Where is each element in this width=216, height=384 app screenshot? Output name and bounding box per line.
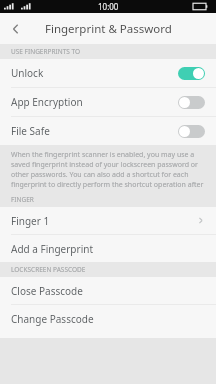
button[interactable]: File Safe (0, 117, 216, 145)
staticText: Add a Fingerprint (11, 242, 94, 256)
button[interactable]: Close Passcode (0, 277, 216, 304)
staticText: Change Passcode (11, 312, 94, 326)
staticText: Close Passcode (11, 284, 83, 298)
staticText: Fingerprint & Password (45, 21, 172, 37)
button[interactable]: App Encryption (0, 88, 216, 116)
button[interactable]: Add a Fingerprint (0, 235, 216, 262)
staticText: FINGER (11, 195, 34, 204)
staticText: USE FINGERPRINTS TO (11, 47, 81, 56)
button[interactable]: Unlock (0, 59, 216, 87)
button[interactable]: Change Passcode (0, 305, 216, 332)
staticText: When the fingerprint scanner is enabled,… (11, 150, 208, 192)
staticText: 10:00 (98, 1, 119, 12)
staticText: App Encryption (11, 95, 83, 109)
staticText: Unlock (11, 66, 44, 80)
staticText: File Safe (11, 124, 50, 138)
button[interactable]: Finger 1 (0, 207, 216, 234)
staticText: Finger 1 (11, 214, 50, 228)
staticText: LOCKSCREEN PASSCODE (11, 265, 86, 274)
button[interactable]: Back (0, 13, 31, 44)
